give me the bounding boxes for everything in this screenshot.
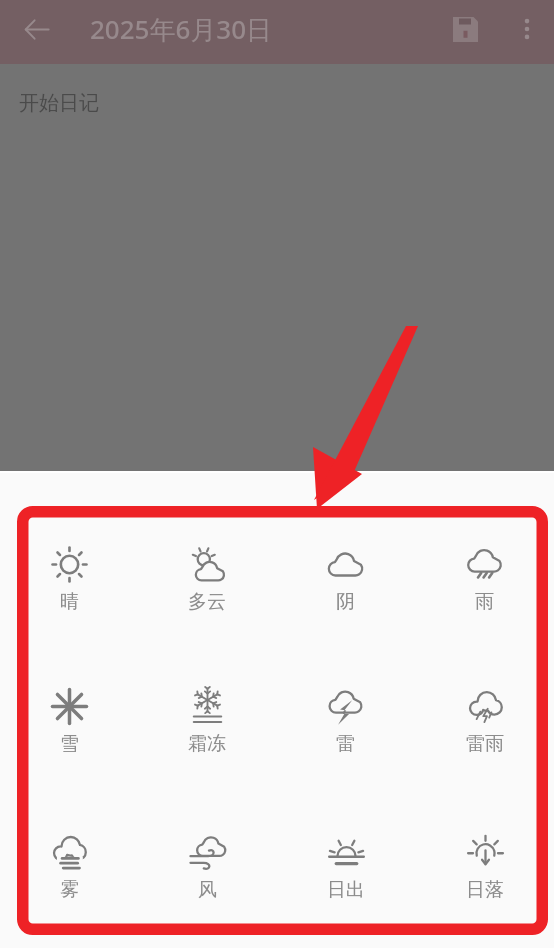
button[interactable]: 雨	[415, 546, 554, 650]
staticText: 日落	[466, 878, 504, 902]
staticText: 雾	[60, 878, 79, 902]
button[interactable]: 霜冻	[138, 688, 276, 792]
staticText: 阴	[336, 590, 355, 614]
button[interactable]: 雷	[276, 688, 415, 792]
button[interactable]: 日落	[415, 834, 554, 938]
button[interactable]: 雾	[0, 834, 138, 938]
button[interactable]: Save	[430, 0, 500, 58]
button[interactable]: 阴	[276, 546, 415, 650]
button[interactable]: 多云	[138, 546, 276, 650]
staticText: 开始日记	[19, 91, 99, 116]
button[interactable]: 日出	[276, 834, 415, 938]
staticText: 雪	[60, 732, 79, 756]
staticText: 雷	[336, 732, 355, 756]
button[interactable]: 雪	[0, 688, 138, 792]
button[interactable]: 雷雨	[415, 688, 554, 792]
button[interactable]: Back	[0, 0, 72, 58]
staticText: 晴	[60, 590, 79, 614]
staticText: 风	[198, 878, 217, 902]
staticText: 雨	[475, 590, 494, 614]
staticText: 多云	[188, 590, 226, 614]
staticText: 2025年6月30日	[90, 11, 273, 47]
button[interactable]: 风	[138, 834, 276, 938]
staticText: 雷雨	[466, 732, 504, 756]
button[interactable]: 晴	[0, 546, 138, 650]
button[interactable]: More options	[500, 0, 554, 58]
staticText: 日出	[327, 878, 365, 902]
staticText: 霜冻	[188, 732, 226, 756]
